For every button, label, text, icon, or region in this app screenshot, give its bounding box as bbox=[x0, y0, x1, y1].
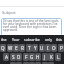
staticText: J bbox=[44, 54, 46, 60]
staticText: Your bbox=[12, 37, 20, 42]
staticText: Y bbox=[34, 45, 37, 51]
button[interactable]: T bbox=[26, 44, 32, 52]
staticText: R bbox=[21, 45, 24, 51]
staticText: W bbox=[8, 45, 13, 51]
staticText: G bbox=[30, 54, 34, 60]
button[interactable]: I bbox=[45, 44, 51, 52]
staticText: O bbox=[52, 45, 56, 51]
staticText: only bbox=[45, 37, 52, 42]
staticText: S bbox=[12, 54, 15, 60]
button[interactable]: P bbox=[58, 44, 64, 52]
button[interactable]: J bbox=[42, 53, 48, 61]
staticText: L bbox=[57, 54, 60, 60]
button[interactable]: Subject bbox=[0, 7, 64, 17]
button[interactable]: F bbox=[23, 53, 29, 61]
button[interactable]: X bbox=[16, 62, 22, 64]
staticText: D bbox=[17, 54, 21, 60]
button[interactable]: M bbox=[48, 62, 54, 64]
button[interactable]: E bbox=[13, 44, 19, 52]
staticText: P bbox=[60, 45, 63, 51]
staticText: the bbox=[1, 37, 7, 42]
staticText: E bbox=[15, 45, 18, 51]
button[interactable]: Z bbox=[10, 62, 16, 64]
staticText: F bbox=[25, 54, 28, 60]
button[interactable]: A bbox=[3, 53, 9, 61]
button[interactable]: R bbox=[19, 44, 25, 52]
button[interactable]: W bbox=[7, 44, 13, 52]
button[interactable]: U bbox=[39, 44, 45, 52]
button[interactable]: V bbox=[29, 62, 35, 64]
button[interactable]: G bbox=[29, 53, 35, 61]
staticText: I'd say that this is one of the best too… bbox=[3, 19, 61, 32]
staticText: T bbox=[28, 45, 31, 51]
button[interactable]: B bbox=[35, 62, 41, 64]
staticText: Subject bbox=[2, 10, 16, 15]
button[interactable]: D bbox=[16, 53, 22, 61]
button[interactable]: H bbox=[35, 53, 41, 61]
button[interactable]: Q bbox=[0, 44, 6, 52]
staticText: A bbox=[5, 54, 8, 60]
staticText: I bbox=[47, 45, 49, 51]
button[interactable]: C bbox=[23, 62, 29, 64]
button[interactable]: K bbox=[48, 53, 54, 61]
staticText: subscribe bbox=[24, 37, 40, 42]
staticText: Q bbox=[1, 45, 5, 51]
staticText: H bbox=[36, 54, 40, 60]
button[interactable]: S bbox=[10, 53, 16, 61]
staticText: K bbox=[50, 54, 53, 60]
staticText: this bbox=[56, 37, 63, 42]
button[interactable]: L bbox=[55, 53, 61, 61]
button[interactable]: N bbox=[42, 62, 48, 64]
button[interactable]: Y bbox=[32, 44, 38, 52]
staticText: U bbox=[40, 45, 44, 51]
button[interactable]: O bbox=[51, 44, 57, 52]
button[interactable]: I'd say that this is one of the best too… bbox=[1, 18, 62, 36]
